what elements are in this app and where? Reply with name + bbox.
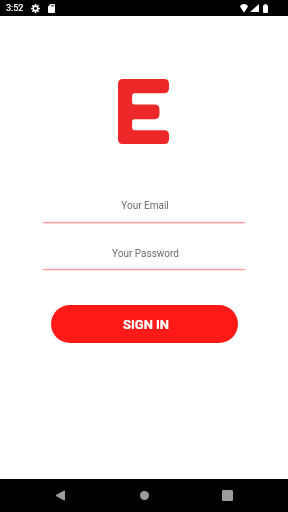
button[interactable]: Recent apps	[203, 480, 251, 511]
button[interactable]: Home	[120, 480, 168, 511]
button[interactable]: Your Password	[43, 238, 245, 271]
staticText: SIGN IN	[123, 317, 170, 332]
staticText: 3:52	[6, 3, 24, 14]
button[interactable]: Back	[36, 480, 84, 511]
button[interactable]: Your Email	[43, 190, 245, 224]
button[interactable]: SIGN IN	[51, 305, 238, 343]
staticText: Your Email	[121, 200, 169, 212]
staticText: Your Password	[112, 248, 179, 260]
